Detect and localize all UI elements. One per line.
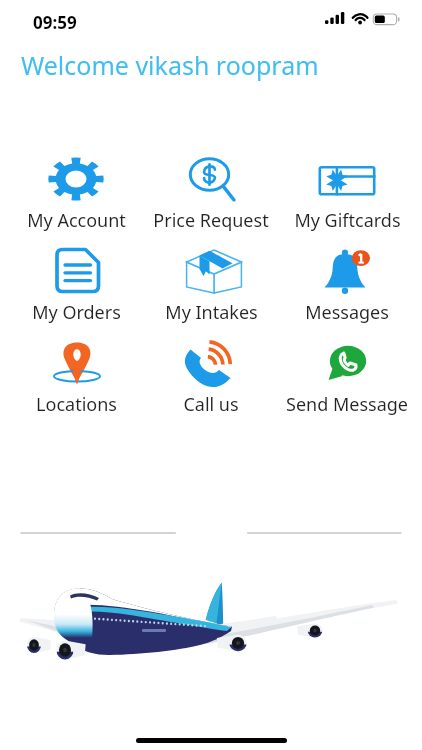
staticText: Welcome vikash roopram [21,48,319,82]
button[interactable]: My Account [12,152,140,235]
staticText: Send Message [286,392,408,417]
button[interactable]: My Orders [12,244,140,327]
staticText: Locations [36,392,117,417]
staticText: 09:59 [33,11,77,34]
staticText: My Giftcards [294,208,401,233]
staticText: My Intakes [165,300,258,325]
staticText: My Orders [32,300,121,325]
button[interactable]: Price Request [147,152,275,235]
button[interactable]: My Intakes [147,244,275,327]
staticText: Price Request [153,208,269,233]
staticText: My Account [27,208,126,233]
button[interactable]: My Giftcards [283,152,411,235]
button[interactable]: Call us [147,336,275,419]
staticText: Messages [305,300,389,325]
button[interactable]: Locations [12,336,140,419]
button[interactable]: Send Message [283,336,411,419]
staticText: Call us [183,392,239,417]
button[interactable]: Messages [283,244,411,327]
